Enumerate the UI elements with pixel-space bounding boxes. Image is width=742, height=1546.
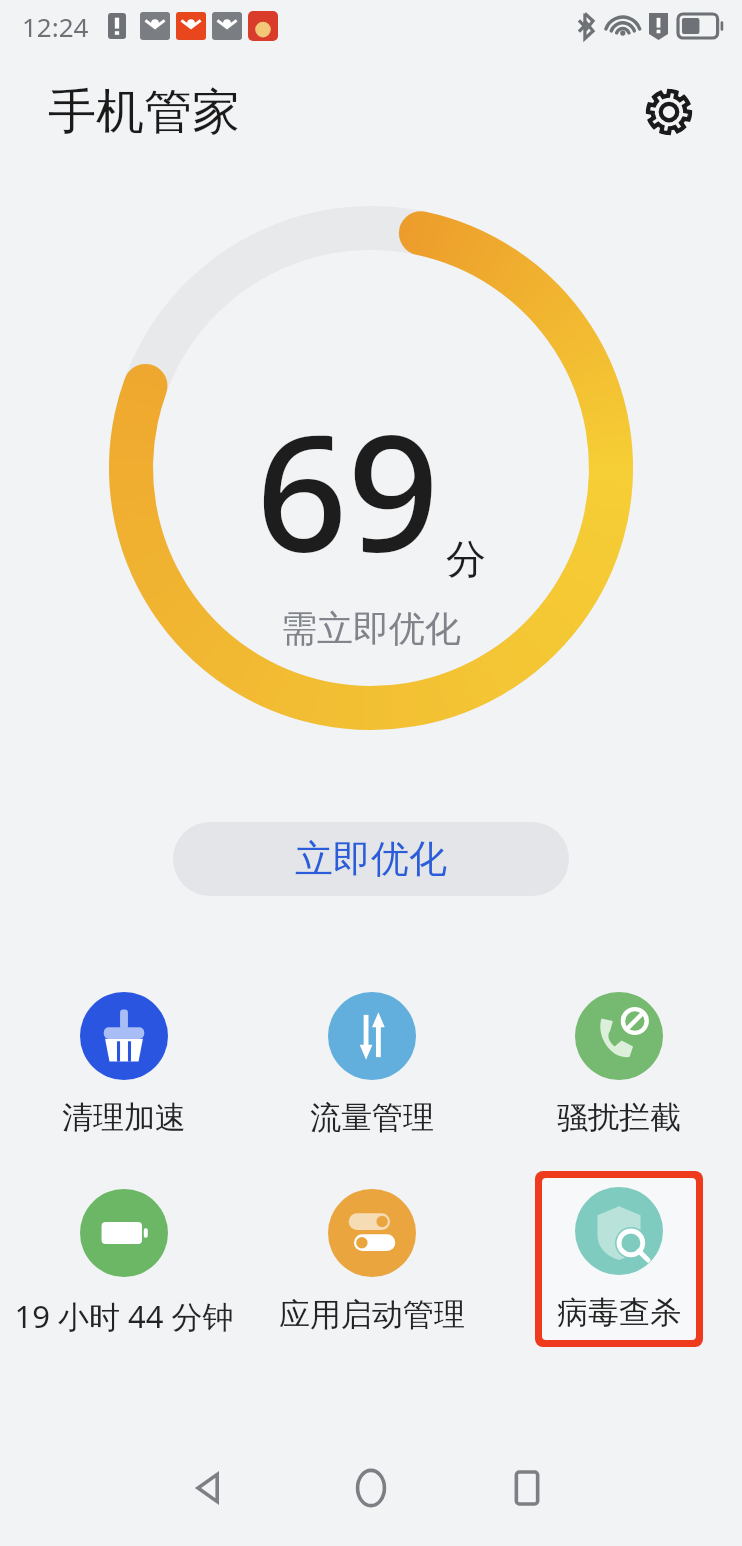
button[interactable]: 应用启动管理 bbox=[248, 1185, 495, 1338]
button[interactable]: Settings bbox=[638, 81, 700, 143]
staticText: 清理加速 bbox=[62, 1098, 186, 1137]
staticText: 分 bbox=[446, 534, 486, 584]
staticText: 骚扰拦截 bbox=[557, 1098, 681, 1137]
button[interactable]: 流量管理 bbox=[248, 988, 495, 1141]
button[interactable]: Back bbox=[170, 1448, 250, 1528]
button[interactable]: 病毒查杀 bbox=[542, 1178, 696, 1340]
staticText: 需立即优化 bbox=[281, 606, 461, 651]
button[interactable]: 清理加速 bbox=[0, 988, 248, 1141]
staticText: 手机管家 bbox=[48, 82, 240, 142]
button[interactable]: 19 小时 44 分钟 bbox=[0, 1185, 248, 1341]
button[interactable]: 骚扰拦截 bbox=[495, 988, 742, 1141]
staticText: 19 小时 44 分钟 bbox=[14, 1295, 234, 1337]
staticText: 病毒查杀 bbox=[557, 1293, 681, 1332]
staticText: 69 bbox=[256, 380, 440, 598]
button[interactable]: Recents bbox=[487, 1448, 567, 1528]
button[interactable]: Home bbox=[331, 1448, 411, 1528]
staticText: 立即优化 bbox=[295, 835, 447, 883]
staticText: 流量管理 bbox=[310, 1098, 434, 1137]
staticText: 应用启动管理 bbox=[279, 1295, 465, 1334]
staticText: 12:24 bbox=[22, 9, 89, 44]
button[interactable]: 立即优化 bbox=[173, 822, 569, 896]
